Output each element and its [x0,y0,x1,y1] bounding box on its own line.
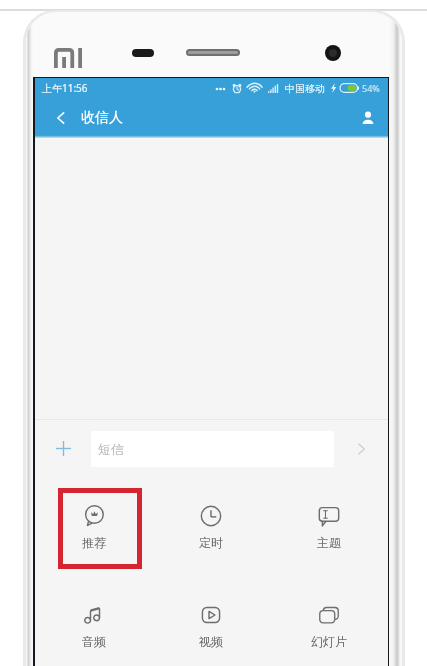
staticText: 幻灯片 [311,634,347,649]
button[interactable]: 幻灯片 [286,591,372,666]
staticText: 中国移动 [285,82,325,95]
staticText: 音频 [82,634,106,649]
staticText: 主题 [317,535,341,550]
button[interactable]: 主题 [286,488,372,569]
staticText: 定时 [199,535,223,550]
button[interactable]: Contacts [348,98,388,138]
button[interactable]: 视频 [168,591,254,666]
button[interactable]: Add attachment [35,420,91,477]
staticText: 收信人 [81,109,123,127]
staticText: 上午11:56 [42,81,88,95]
button[interactable]: 短信 [91,431,334,467]
staticText: 短信 [98,441,124,457]
button[interactable]: 推荐 [51,488,137,569]
staticText: 视频 [199,634,223,649]
staticText: 推荐 [82,535,106,550]
staticText: 54% [362,82,380,94]
button[interactable]: Back [42,98,78,138]
button[interactable]: 定时 [168,488,254,569]
button[interactable]: 音频 [51,591,137,666]
